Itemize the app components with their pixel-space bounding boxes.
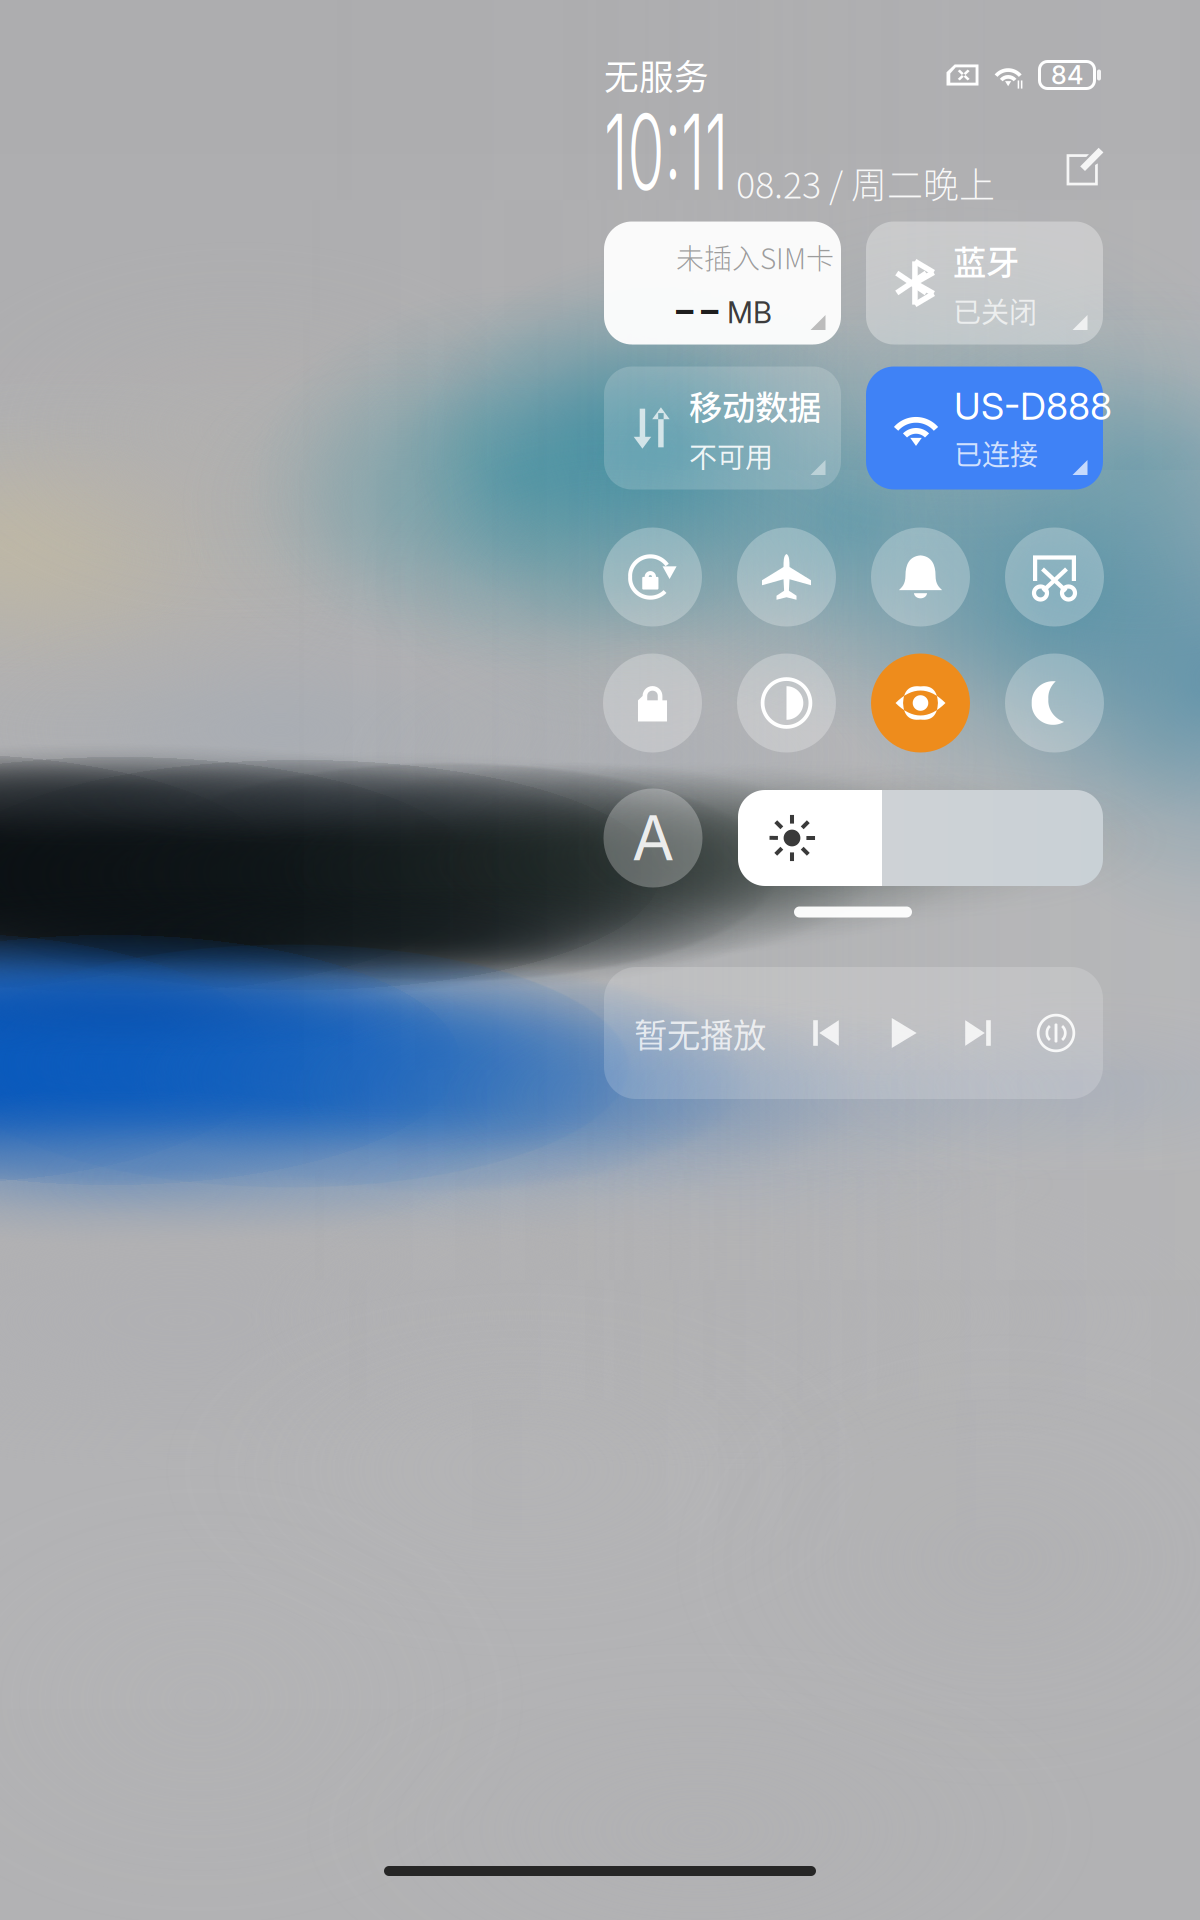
button[interactable]: 截屏: [1005, 527, 1104, 626]
button[interactable]: 蓝牙: [866, 221, 1103, 344]
button[interactable]: 未插入SIM卡: [604, 221, 841, 344]
staticText: 不可用: [689, 435, 773, 476]
staticText: 未插入SIM卡: [676, 237, 834, 277]
button[interactable]: 旋转锁定: [603, 527, 702, 626]
button[interactable]: 暂无播放: [604, 967, 1103, 1099]
staticText: – –: [676, 288, 718, 330]
staticText: MB: [727, 295, 772, 330]
staticText: US-D888: [954, 384, 1112, 429]
button[interactable]: US-D888: [866, 366, 1103, 489]
button[interactable]: 深色模式: [737, 653, 836, 752]
staticText: 移动数据: [689, 381, 821, 429]
button[interactable]: 飞行模式: [737, 527, 836, 626]
staticText: 已连接: [954, 433, 1038, 473]
staticText: 无服务: [604, 50, 709, 100]
button[interactable]: 移动数据: [604, 366, 841, 489]
button[interactable]: 护眼模式: [871, 653, 970, 752]
button[interactable]: 自动亮度: [603, 788, 702, 887]
staticText: 10:11: [604, 89, 820, 215]
button[interactable]: 锁屏: [603, 653, 702, 752]
button[interactable]: 亮度: [738, 790, 1103, 886]
staticText: 蓝牙: [953, 236, 1019, 284]
staticText: 暂无播放: [634, 1009, 766, 1057]
staticText: A: [632, 801, 674, 875]
button[interactable]: 编辑: [1065, 147, 1105, 187]
staticText: 已关闭: [953, 290, 1037, 331]
staticText: 84: [1051, 60, 1083, 90]
staticText: 08.23 / 周二晚上: [736, 157, 995, 209]
button[interactable]: 响铃: [871, 527, 970, 626]
button[interactable]: 勿扰模式: [1005, 653, 1104, 752]
